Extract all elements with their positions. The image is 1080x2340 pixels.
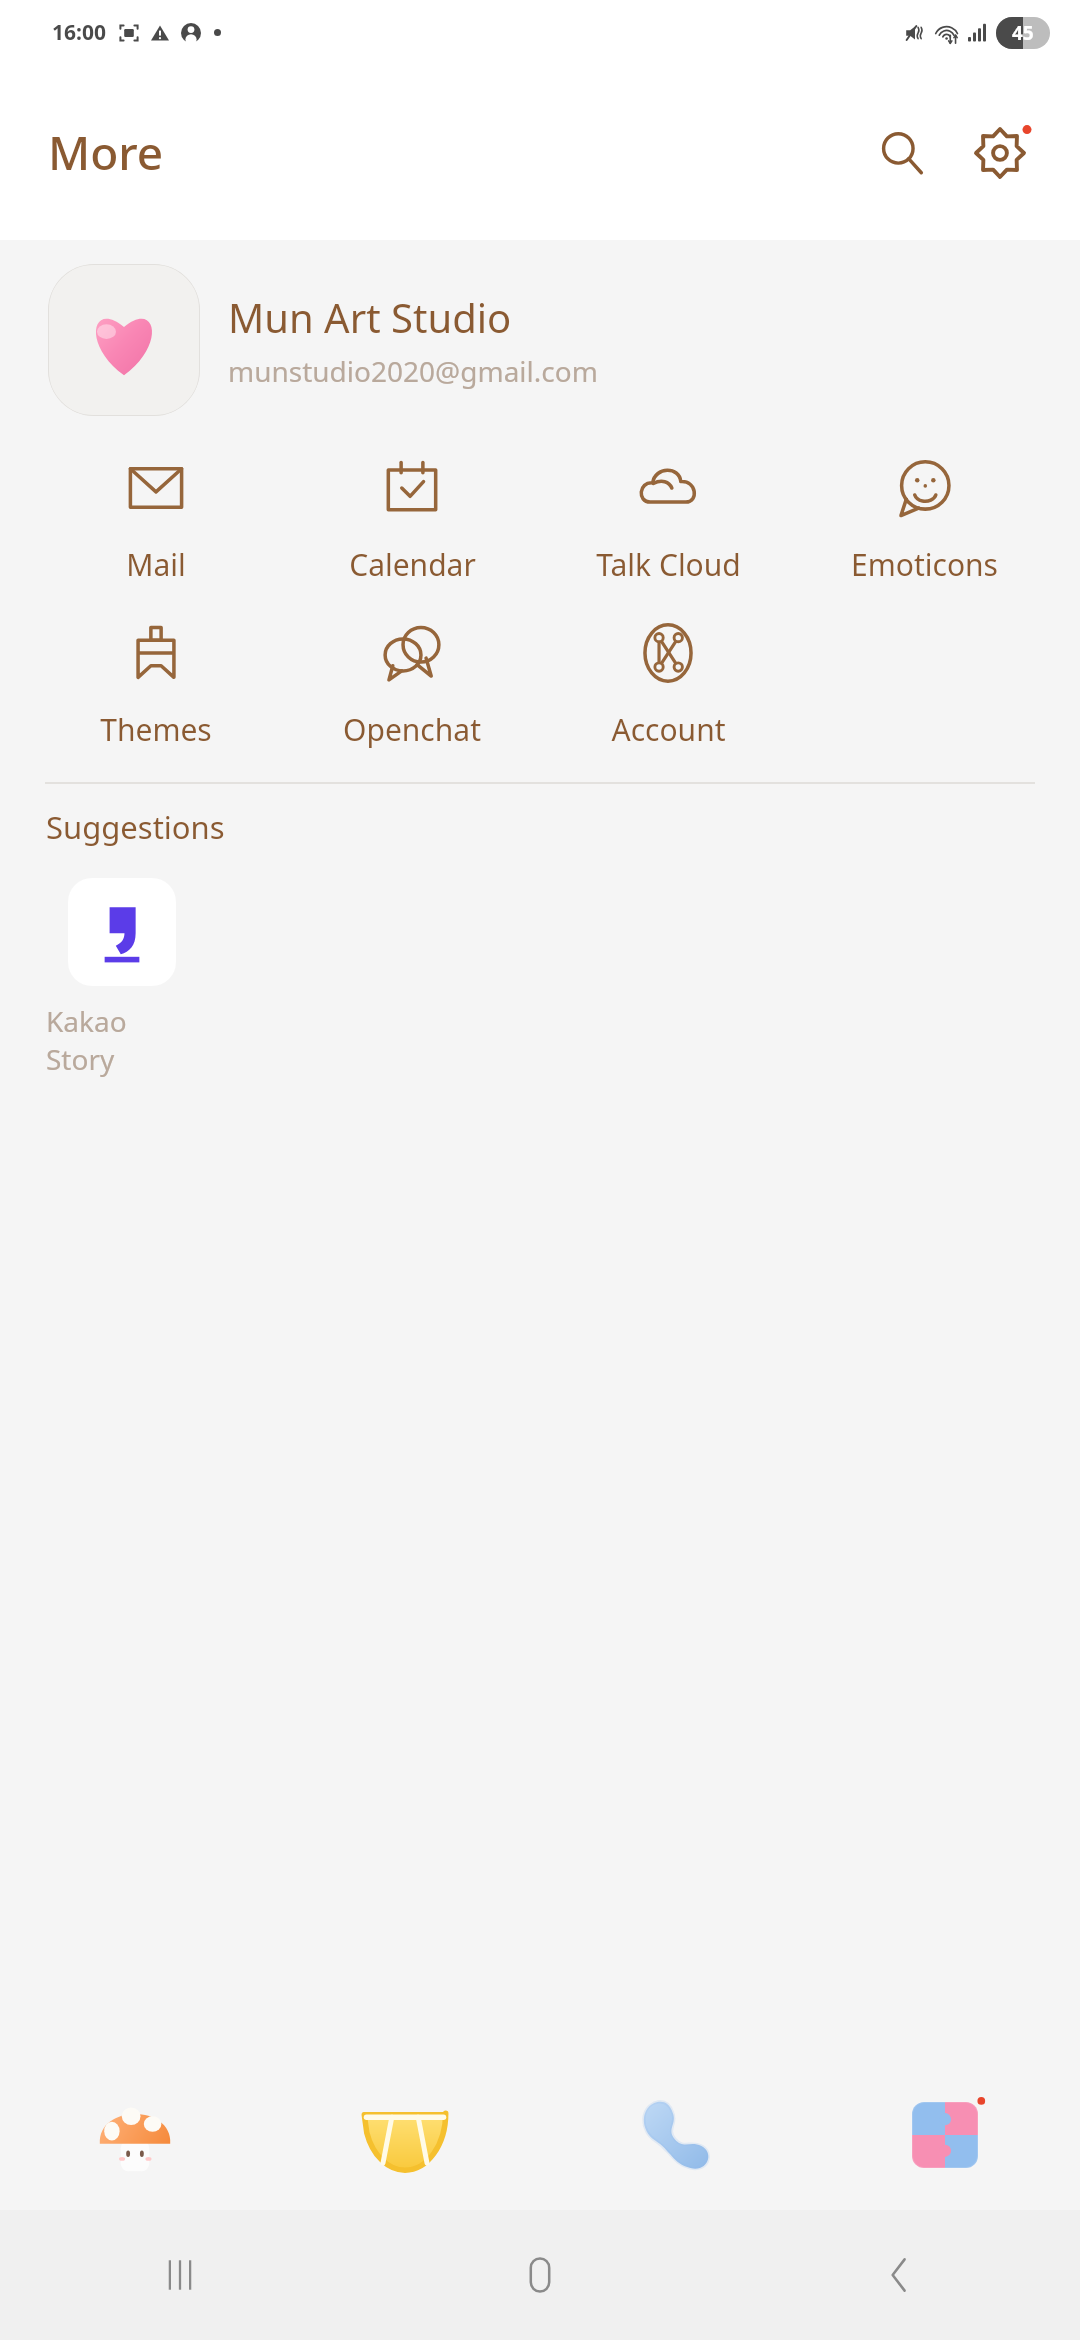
button[interactable]: Talk Cloud xyxy=(540,446,796,595)
staticText: Mun Art Studio xyxy=(228,290,512,344)
staticText: Talk Cloud xyxy=(596,544,741,585)
button[interactable]: Emoticons xyxy=(796,446,1052,595)
button[interactable]: Mun Art Studio xyxy=(0,258,1080,422)
button[interactable]: Friends xyxy=(0,2060,270,2210)
button[interactable]: Themes xyxy=(28,611,284,760)
button[interactable]: Openchat xyxy=(284,611,540,760)
staticText: munstudio2020@gmail.com xyxy=(228,352,598,390)
button[interactable]: Chats xyxy=(270,2060,540,2210)
button[interactable]: Account xyxy=(540,611,796,760)
button[interactable]: Calendar xyxy=(284,446,540,595)
button[interactable]: More xyxy=(810,2060,1080,2210)
staticText: Kakao Story xyxy=(46,1002,198,1078)
staticText: Calendar xyxy=(349,544,476,585)
button[interactable]: Mail xyxy=(28,446,284,595)
button[interactable]: Search xyxy=(862,113,942,193)
staticText: Emoticons xyxy=(851,544,998,585)
button[interactable]: Calls xyxy=(540,2060,810,2210)
button[interactable]: Suggestions xyxy=(46,806,225,848)
staticText: 16:00 xyxy=(52,18,106,47)
staticText: Openchat xyxy=(343,709,481,750)
staticText: 45 xyxy=(1012,20,1034,46)
staticText: More xyxy=(48,121,164,184)
button[interactable]: Back xyxy=(720,2210,1080,2340)
button[interactable]: Settings xyxy=(960,113,1040,193)
button[interactable]: Kakao Story xyxy=(46,878,198,1078)
button[interactable]: Home xyxy=(360,2210,720,2340)
button[interactable]: Recents xyxy=(0,2210,360,2340)
staticText: Mail xyxy=(126,544,186,585)
staticText: Themes xyxy=(100,709,212,750)
staticText: Account xyxy=(611,709,726,750)
